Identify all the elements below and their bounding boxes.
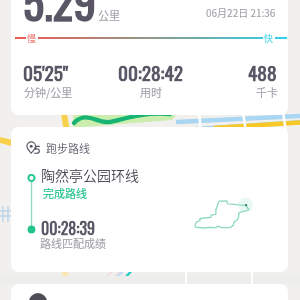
staticText: 快 bbox=[264, 32, 274, 45]
button[interactable] bbox=[11, 284, 288, 300]
button[interactable]: 5.29 bbox=[11, 0, 288, 115]
staticText: 5.29 bbox=[23, 0, 97, 34]
staticText: 千卡 bbox=[256, 84, 278, 100]
other: Running route bbox=[25, 140, 40, 155]
staticText: 路线匹配成绩 bbox=[40, 235, 106, 251]
staticText: 陶然亭公园环线 bbox=[41, 165, 139, 185]
staticText: 05'25" bbox=[23, 58, 69, 87]
staticText: 分钟/公里 bbox=[24, 84, 73, 100]
staticText: 06月22日 21:36 bbox=[206, 5, 276, 19]
staticText: 跑步路线 bbox=[46, 140, 90, 156]
button[interactable]: Running route bbox=[11, 127, 288, 272]
staticText: 488 bbox=[248, 58, 277, 87]
staticText: 公里 bbox=[98, 7, 120, 23]
staticText: 用时 bbox=[140, 84, 162, 100]
staticText: 完成路线 bbox=[43, 185, 87, 201]
staticText: 00:28:42 bbox=[118, 58, 183, 87]
staticText: 慢 bbox=[27, 32, 37, 45]
staticText: 00:28:39 bbox=[41, 216, 96, 240]
